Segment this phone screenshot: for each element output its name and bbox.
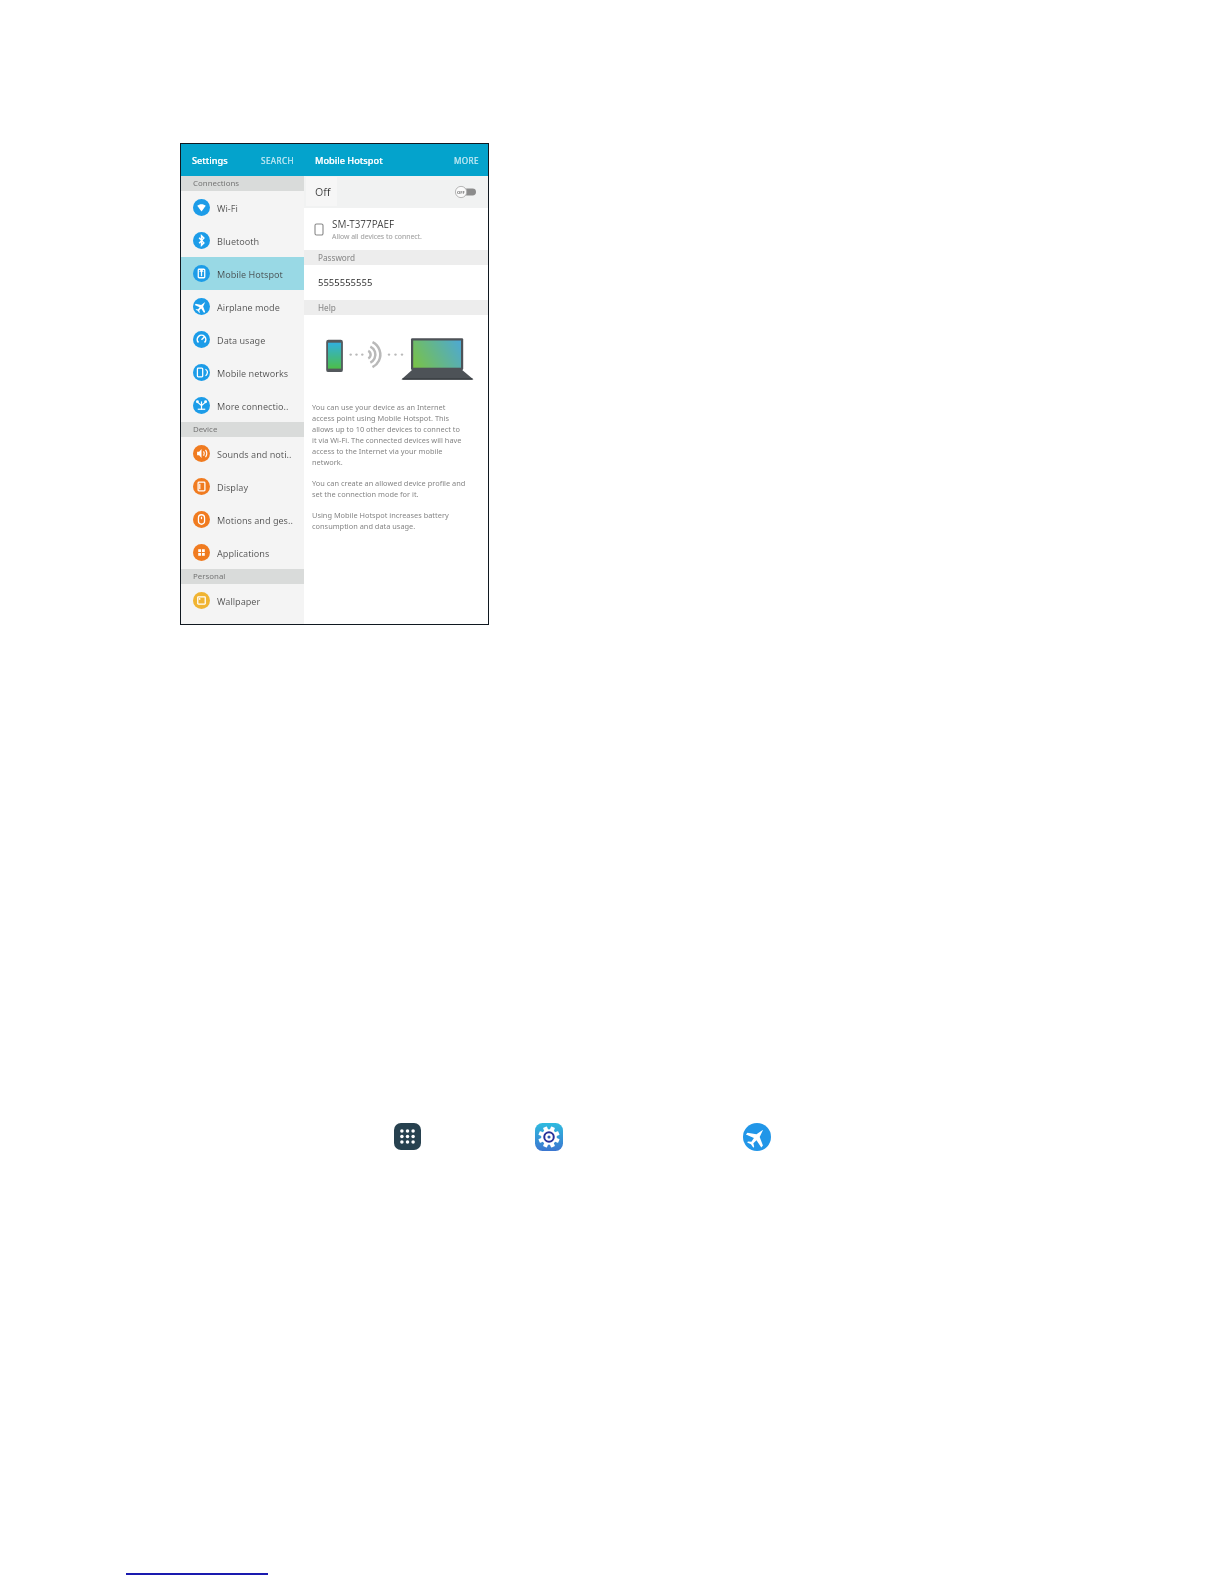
button[interactable]: More connectio.. <box>181 389 304 422</box>
button[interactable]: Off <box>304 176 488 208</box>
staticText: You can create an allowed device profile… <box>312 478 466 499</box>
staticText: Settings <box>192 154 228 167</box>
button[interactable]: Mobile Hotspot off <box>455 186 476 198</box>
button[interactable]: SEARCH <box>252 144 304 176</box>
staticText: Sounds and noti.. <box>217 448 292 460</box>
staticText: Mobile Hotspot <box>217 268 283 280</box>
staticText: Bluetooth <box>217 235 260 247</box>
button[interactable]: Mobile Hotspot <box>181 257 304 290</box>
staticText: SM-T377PAEF <box>332 217 395 230</box>
staticText: OFF <box>457 190 465 196</box>
staticText: Data usage <box>217 334 266 346</box>
staticText: 5555555555 <box>318 276 373 289</box>
staticText: Help <box>318 302 336 313</box>
button[interactable]: Settings <box>535 1123 563 1151</box>
staticText: Wi-Fi <box>217 202 238 214</box>
staticText: Applications <box>217 547 270 559</box>
staticText: MORE <box>454 155 480 166</box>
button[interactable]: MORE <box>446 144 488 176</box>
button[interactable]: Apps <box>394 1123 421 1150</box>
button[interactable]: Airplane mode <box>743 1123 771 1151</box>
staticText: Password <box>318 252 356 263</box>
button[interactable]: 5555555555 <box>304 265 488 300</box>
staticText: Personal <box>193 571 226 582</box>
staticText: Display <box>217 481 249 493</box>
staticText: Mobile networks <box>217 367 289 379</box>
staticText: Using Mobile Hotspot increases battery c… <box>312 510 449 531</box>
staticText: You can use your device as an Internet a… <box>312 402 462 467</box>
button[interactable]: Data usage <box>181 323 304 356</box>
button[interactable]: SM-T377PAEF <box>304 208 488 250</box>
button[interactable]: Motions and ges.. <box>181 503 304 536</box>
staticText: Device <box>193 424 218 435</box>
button[interactable]: Wi-Fi <box>181 191 304 224</box>
button[interactable]: Wallpaper <box>181 584 304 617</box>
button[interactable]: Bluetooth <box>181 224 304 257</box>
staticText: Wallpaper <box>217 595 261 607</box>
button[interactable]: Applications <box>181 536 304 569</box>
button[interactable]: Sounds and noti.. <box>181 437 304 470</box>
button[interactable]: Display <box>181 470 304 503</box>
staticText: Airplane mode <box>217 301 280 313</box>
staticText: Off <box>315 185 331 199</box>
staticText: More connectio.. <box>217 400 289 412</box>
button[interactable]: Airplane mode <box>181 290 304 323</box>
staticText: Connections <box>193 178 240 189</box>
staticText: Motions and ges.. <box>217 514 293 526</box>
staticText: Mobile Hotspot <box>315 154 383 167</box>
button[interactable]: Mobile networks <box>181 356 304 389</box>
staticText: Allow all devices to connect. <box>332 232 422 241</box>
staticText: SEARCH <box>261 155 295 166</box>
